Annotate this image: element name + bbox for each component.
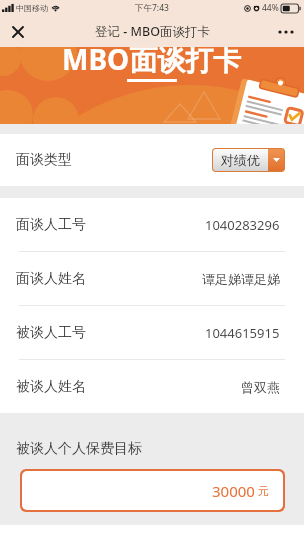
button[interactable]: 面谈人姓名 (0, 251, 304, 305)
staticText: MBO面谈打卡 (62, 47, 242, 78)
staticText: 中国移动 (16, 3, 48, 13)
staticText: 面谈人工号 (16, 216, 86, 234)
staticText: 登记 - MBO面谈打卡 (95, 23, 210, 40)
button[interactable]: 面谈人工号 (0, 198, 304, 251)
staticText: 谭足娣谭足娣 (202, 271, 280, 287)
staticText: 被谈人姓名 (16, 378, 86, 396)
staticText: 面谈类型 (16, 151, 72, 169)
staticText: 44% (262, 2, 279, 14)
staticText: 下午7:43 (135, 2, 169, 14)
button[interactable]: More options (268, 16, 304, 47)
button[interactable]: 对绩优 (213, 149, 284, 171)
button[interactable]: 面谈类型 (0, 134, 304, 186)
staticText: 被谈人个人保费目标 (16, 440, 142, 458)
staticText: 1044615915 (205, 324, 280, 342)
staticText: 曾双燕 (241, 379, 280, 395)
staticText: 被谈人工号 (16, 324, 86, 342)
button[interactable]: Close (0, 16, 36, 47)
staticText: 对绩优 (221, 152, 260, 168)
staticText: 1040283296 (205, 216, 280, 234)
staticText: 30000 (212, 481, 255, 501)
staticText: 元 (258, 484, 269, 498)
staticText: 面谈人姓名 (16, 270, 86, 288)
button[interactable]: 被谈人工号 (0, 305, 304, 359)
button[interactable]: 30000 (22, 471, 283, 510)
button[interactable]: 被谈人姓名 (0, 359, 304, 413)
